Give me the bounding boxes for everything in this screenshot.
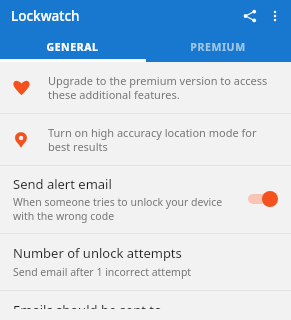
staticText: Send email after 1 incorrect attempt [13,265,192,279]
staticText: PREMIUM [190,40,246,54]
staticText: Send alert email [13,175,112,193]
staticText: Turn on high accuracy location mode for … [48,125,275,154]
staticText: Lockwatch [11,7,80,25]
button[interactable]: PREMIUM [145,31,291,62]
staticText: GENERAL [46,40,99,54]
button[interactable]: GENERAL [0,31,145,62]
button[interactable]: Share [237,3,263,29]
button[interactable]: Upgrade to the premium version to access… [0,62,291,113]
button[interactable]: Emails should be sent to [0,291,291,320]
staticText: Emails should be sent to [13,301,162,309]
staticText: Upgrade to the premium version to access… [48,73,275,102]
staticText: Number of unlock attempts [13,244,182,262]
staticText: When someone tries to unlock your device… [13,195,241,223]
button[interactable]: Turn on high accuracy location mode for … [0,114,291,165]
button[interactable]: More options [263,4,287,28]
button[interactable]: Send alert email toggle [247,189,279,209]
button[interactable]: Send alert email [0,166,291,233]
button[interactable]: Number of unlock attempts [0,234,291,290]
